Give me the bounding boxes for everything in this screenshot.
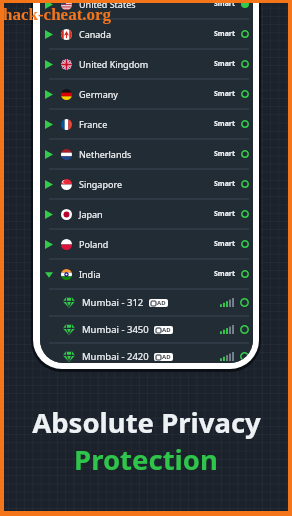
button[interactable]: India <box>40 259 253 289</box>
button[interactable]: United Kingdom <box>40 49 253 79</box>
staticText: Smart <box>214 59 236 69</box>
staticText: India <box>79 268 101 280</box>
staticText: hack-cheat.org <box>3 5 112 24</box>
button[interactable]: Mumbai - 312 <box>40 289 253 316</box>
staticText: Absolute Privacy <box>32 404 261 441</box>
button[interactable]: Singapore <box>40 169 253 199</box>
staticText: AD <box>157 299 166 307</box>
staticText: Singapore <box>79 178 123 190</box>
staticText: Smart <box>214 149 236 159</box>
staticText: Smart <box>214 209 236 219</box>
staticText: France <box>79 118 108 130</box>
button[interactable]: United States <box>40 0 253 19</box>
staticText: Mumbai - 312 <box>82 296 144 309</box>
staticText: Protection <box>74 441 218 478</box>
staticText: Smart <box>214 0 236 9</box>
staticText: Netherlands <box>79 148 132 160</box>
button[interactable]: Mumbai - 2420 <box>40 343 253 363</box>
staticText: Poland <box>79 238 109 250</box>
staticText: AD <box>162 353 171 361</box>
staticText: Japan <box>79 208 103 220</box>
button[interactable]: Netherlands <box>40 139 253 169</box>
staticText: AD <box>162 326 171 334</box>
staticText: Smart <box>214 239 236 249</box>
staticText: Smart <box>214 119 236 129</box>
button[interactable]: Japan <box>40 199 253 229</box>
button[interactable]: Mumbai - 3450 <box>40 316 253 343</box>
button[interactable]: Germany <box>40 79 253 109</box>
button[interactable]: Canada <box>40 19 253 49</box>
staticText: Smart <box>214 179 236 189</box>
staticText: Germany <box>79 88 118 100</box>
staticText: Mumbai - 2420 <box>82 350 149 363</box>
button[interactable]: France <box>40 109 253 139</box>
staticText: United States <box>79 0 136 10</box>
staticText: United Kingdom <box>79 58 149 70</box>
staticText: Smart <box>214 89 236 99</box>
staticText: Mumbai - 3450 <box>82 323 149 336</box>
staticText: Smart <box>214 269 236 279</box>
button[interactable]: Poland <box>40 229 253 259</box>
staticText: Smart <box>214 29 236 39</box>
staticText: Canada <box>79 28 111 40</box>
